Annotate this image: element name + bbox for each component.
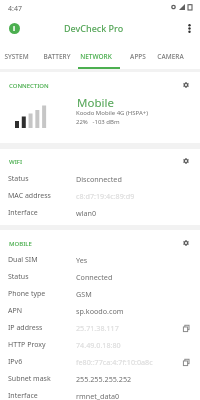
button[interactable]: Copy [179, 355, 193, 369]
staticText: WIFI [9, 158, 23, 166]
button[interactable]: IPv6 [0, 353, 200, 370]
staticText: 22% -103 dBm [76, 118, 120, 126]
button[interactable]: Status [0, 170, 200, 187]
staticText: Interface [8, 391, 38, 400]
staticText: APN [8, 306, 23, 316]
staticText: CAMERA [157, 52, 184, 61]
staticText: Connected [76, 272, 113, 282]
button[interactable]: CAMERA [155, 42, 200, 69]
button[interactable]: Subnet mask [0, 370, 200, 387]
staticText: Yes [76, 255, 88, 265]
staticText: 4:47 [8, 4, 22, 14]
button[interactable]: More options [181, 20, 197, 36]
staticText: MOBILE [9, 240, 32, 248]
staticText: SYSTEM [4, 52, 29, 61]
staticText: Mobile [77, 95, 114, 111]
staticText: sp.koodo.com [76, 306, 124, 316]
staticText: 255.255.255.252 [76, 374, 132, 384]
staticText: 74.49.0.18:80 [76, 340, 121, 350]
button[interactable]: APN [0, 302, 200, 319]
button[interactable]: NETWORK [78, 42, 117, 69]
button[interactable]: HTTP Proxy [0, 336, 200, 353]
staticText: APPS [130, 52, 146, 61]
staticText: NETWORK [80, 52, 112, 61]
staticText: Dual SIM [8, 255, 38, 265]
staticText: Disconnected [76, 174, 122, 184]
staticText: fe80::77ca:4:7f:10:0a8c [76, 357, 153, 367]
staticText: HTTP Proxy [8, 340, 46, 350]
staticText: IP address [8, 323, 43, 333]
button[interactable]: IP address [0, 319, 200, 336]
staticText: Interface [8, 208, 38, 218]
staticText: 25.71.38.117 [76, 323, 119, 333]
button[interactable]: Settings [179, 154, 193, 168]
staticText: IPv6 [8, 357, 23, 367]
button[interactable]: MAC address [0, 187, 200, 204]
staticText: MAC address [8, 191, 51, 201]
staticText: BATTERY [43, 52, 71, 61]
staticText: c8:d7:19:4c:89:d9 [76, 191, 135, 201]
button[interactable]: Dual SIM [0, 251, 200, 268]
staticText: Status [8, 272, 29, 282]
button[interactable]: Info [5, 19, 23, 37]
button[interactable]: Status [0, 268, 200, 285]
button[interactable]: Settings [179, 78, 193, 92]
staticText: GSM [76, 289, 92, 299]
staticText: wlan0 [76, 208, 97, 218]
button[interactable] [0, 94, 200, 143]
staticText: Phone type [8, 289, 46, 299]
staticText: rmnet_data0 [76, 391, 120, 400]
staticText: Subnet mask [8, 374, 51, 384]
button[interactable]: Interface [0, 387, 200, 400]
staticText: CONNECTION [9, 82, 49, 90]
button[interactable]: BATTERY [36, 42, 78, 69]
button[interactable]: Settings [179, 236, 193, 250]
staticText: Status [8, 174, 29, 184]
staticText: Koodo Mobile 4G (HSPA+) [76, 109, 148, 117]
button[interactable]: Interface [0, 204, 200, 221]
button[interactable]: Phone type [0, 285, 200, 302]
button[interactable]: SYSTEM [0, 42, 36, 69]
staticText: DevCheck Pro [64, 22, 124, 34]
staticText: i [13, 24, 16, 34]
button[interactable]: Copy [179, 321, 193, 335]
button[interactable]: APPS [117, 42, 155, 69]
